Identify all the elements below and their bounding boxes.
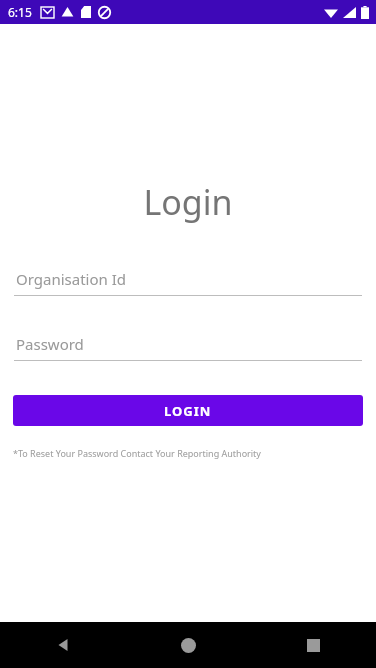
button[interactable]: Home — [126, 622, 251, 668]
button[interactable]: Back — [0, 622, 126, 668]
staticText: Password — [16, 334, 84, 354]
staticText: 6:15 — [8, 4, 32, 20]
staticText: LOGIN — [164, 402, 212, 420]
button[interactable]: Organisation Id — [14, 269, 362, 296]
staticText: Organisation Id — [16, 269, 126, 289]
staticText: *To Reset Your Password Contact Your Rep… — [13, 447, 261, 459]
staticText: Login — [0, 179, 376, 225]
button[interactable]: Password — [14, 334, 362, 361]
button[interactable]: Recent apps — [251, 622, 376, 668]
button[interactable]: LOGIN — [13, 395, 363, 426]
